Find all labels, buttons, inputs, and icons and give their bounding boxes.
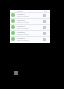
staticText: All xyxy=(44,10,47,12)
staticText: Tap to read more xyxy=(17,27,31,30)
other: Status xyxy=(11,25,15,29)
other: Status xyxy=(11,19,15,23)
other: Status xyxy=(11,31,15,35)
button[interactable]: Status xyxy=(10,18,50,24)
button[interactable]: Status xyxy=(10,30,50,36)
button[interactable]: Status xyxy=(10,12,50,18)
staticText: Tap to read more xyxy=(17,39,31,42)
staticText: Weekly project update xyxy=(17,12,31,15)
other: Status xyxy=(11,37,15,41)
staticText: Tap to read more xyxy=(17,21,31,24)
staticText: Weekly project update xyxy=(17,24,31,27)
staticText: Weekly project update xyxy=(17,18,31,21)
staticText: Weekly project update xyxy=(17,30,31,33)
staticText: Tap to read more xyxy=(17,15,31,18)
staticText: Inbox messages xyxy=(17,10,31,12)
other: Status xyxy=(11,13,15,17)
button[interactable]: Status xyxy=(10,36,50,42)
button[interactable]: Status xyxy=(10,24,50,30)
staticText: Tap to read more xyxy=(17,33,31,36)
staticText: Weekly project update xyxy=(17,36,31,39)
